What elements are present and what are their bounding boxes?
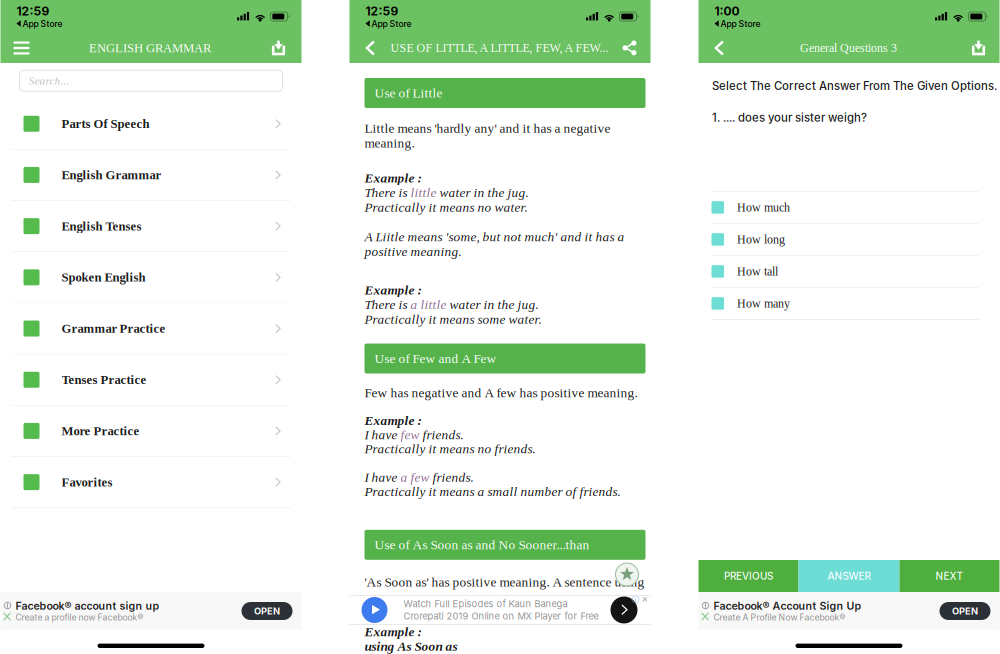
staticText: Practically it means some water.	[364, 312, 541, 327]
button[interactable]: How much	[698, 192, 999, 224]
staticText: I have	[364, 470, 400, 485]
staticText: ENGLISH GRAMMAR	[89, 41, 211, 55]
staticText: App Store	[372, 18, 412, 29]
staticText: Facebook® Account Sign Up	[713, 599, 861, 612]
staticText: Little means 'hardly any' and it has a n…	[364, 121, 610, 136]
staticText: I have	[364, 427, 400, 442]
staticText: App Store	[721, 18, 761, 29]
staticText: There is	[364, 297, 410, 312]
button[interactable]: How long	[698, 224, 999, 256]
button[interactable]: How tall	[698, 256, 999, 288]
staticText: Create a profile now Facebook®	[15, 612, 143, 623]
button[interactable]: Grammar Practice	[0, 303, 301, 354]
staticText: USE OF LITTLE, A LITTLE, FEW, A FEW...	[390, 41, 608, 55]
staticText: OPEN	[254, 605, 280, 617]
staticText: 'As Soon as' has positive meaning. A sen…	[364, 575, 644, 589]
staticText: Example :	[364, 624, 421, 639]
button[interactable]: Menu	[6, 33, 36, 63]
staticText: Use of Little	[374, 86, 442, 100]
staticText: General Questions 3	[800, 41, 897, 55]
staticText: water in the jug.	[436, 185, 528, 200]
staticText: How much	[737, 201, 790, 214]
staticText: English Tenses	[61, 219, 141, 233]
staticText: Spoken English	[61, 270, 145, 284]
staticText: Practically it means no friends.	[364, 441, 535, 456]
button[interactable]: OPEN	[939, 602, 990, 620]
staticText: Practically it means no water.	[364, 200, 527, 215]
staticText: 1:00	[714, 4, 739, 18]
staticText: NEXT	[935, 570, 963, 582]
staticText: Example :	[364, 413, 421, 428]
button[interactable]: PREVIOUS	[698, 560, 798, 592]
staticText: friends.	[429, 470, 473, 485]
button[interactable]: ANSWER	[798, 560, 899, 592]
staticText: ⓘ	[631, 594, 639, 605]
staticText: ✕	[641, 595, 648, 604]
staticText: ANSWER	[827, 570, 870, 582]
staticText: A Liitle means 'some, but not much' and …	[364, 229, 624, 244]
staticText: How long	[737, 233, 785, 246]
button[interactable]: Download	[965, 33, 991, 63]
button[interactable]: Search...	[19, 70, 282, 91]
staticText: Grammar Practice	[61, 321, 165, 335]
button[interactable]: Parts Of Speech	[0, 98, 301, 150]
staticText: water in the jug.	[446, 297, 538, 312]
staticText: few	[400, 427, 419, 442]
staticText: 1. .... does your sister weigh?	[712, 111, 867, 124]
button[interactable]: Tenses Practice	[0, 354, 301, 406]
button[interactable]: NEXT	[899, 560, 999, 592]
button[interactable]: Back	[356, 33, 382, 63]
staticText: Crorepati 2019 Online on MX Player for F…	[403, 610, 598, 622]
button[interactable]: Favorites	[0, 457, 301, 508]
staticText: Select The Correct Answer From The Given…	[712, 79, 997, 93]
staticText: friends.	[419, 427, 463, 442]
staticText: Use of Few and A Few	[374, 351, 496, 366]
staticText: OPEN	[952, 605, 978, 617]
button[interactable]: English Grammar	[0, 150, 301, 201]
staticText: a little	[410, 297, 446, 312]
staticText: a few	[400, 470, 429, 485]
staticText: positive meaning.	[364, 244, 461, 259]
staticText: Practically it means a small number of f…	[364, 484, 620, 499]
button[interactable]: Download	[263, 33, 293, 63]
button[interactable]: How many	[698, 288, 999, 320]
staticText: Favorites	[61, 475, 112, 489]
staticText: There is	[364, 185, 410, 200]
staticText: Example :	[364, 171, 421, 185]
button[interactable]: OPEN	[241, 602, 292, 620]
staticText: App Store	[23, 18, 63, 29]
staticText: 12:59	[16, 4, 49, 18]
staticText: How tall	[737, 265, 778, 278]
button[interactable]: Share	[616, 33, 642, 63]
button[interactable]: Back	[705, 33, 731, 63]
staticText: Search...	[28, 74, 69, 87]
button[interactable]: English Tenses	[0, 201, 301, 252]
staticText: Facebook® account sign up	[15, 599, 159, 612]
staticText: Example :	[364, 283, 421, 297]
staticText: How many	[737, 297, 790, 310]
staticText: meaning.	[364, 135, 414, 150]
staticText: little	[410, 185, 436, 200]
staticText: Tenses Practice	[61, 373, 146, 387]
staticText: Few has negative and A few has positive …	[364, 385, 637, 400]
staticText: English Grammar	[61, 168, 161, 182]
staticText: Parts Of Speech	[61, 117, 149, 131]
button[interactable]: More Practice	[0, 406, 301, 457]
staticText: Use of As Soon as and No Sooner...than	[374, 537, 589, 552]
button[interactable]: Spoken English	[0, 252, 301, 303]
staticText: Watch Full Episodes of Kaun Banega	[403, 598, 567, 609]
staticText: using As Soon as	[364, 639, 457, 654]
staticText: PREVIOUS	[724, 570, 773, 582]
staticText: More Practice	[61, 424, 139, 438]
staticText: Create A Profile Now Facebook®	[713, 612, 845, 623]
staticText: 12:59	[365, 4, 398, 18]
